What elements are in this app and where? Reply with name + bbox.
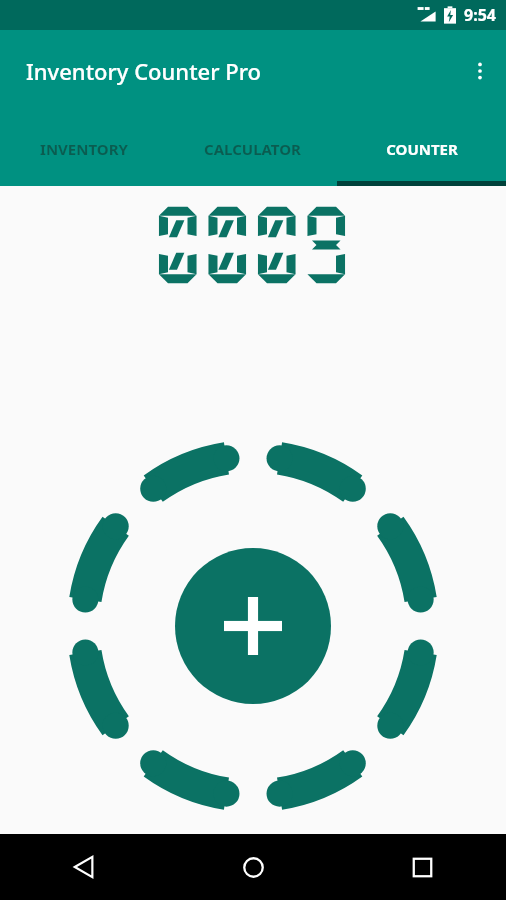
staticText: COUNTER xyxy=(386,139,458,159)
staticText: CALCULATOR xyxy=(204,139,301,159)
staticText: INVENTORY xyxy=(40,139,128,159)
button[interactable]: Home xyxy=(227,841,279,893)
button[interactable]: Back xyxy=(58,841,110,893)
button[interactable]: INVENTORY xyxy=(0,112,168,186)
staticText: Inventory Counter Pro xyxy=(26,56,261,86)
button[interactable]: COUNTER xyxy=(337,112,506,186)
button[interactable]: More options xyxy=(454,45,506,97)
staticText: 9:54 xyxy=(464,4,496,26)
button[interactable]: Increment counter xyxy=(175,548,331,704)
button[interactable]: CALCULATOR xyxy=(168,112,337,186)
button[interactable]: Recent apps xyxy=(396,841,448,893)
